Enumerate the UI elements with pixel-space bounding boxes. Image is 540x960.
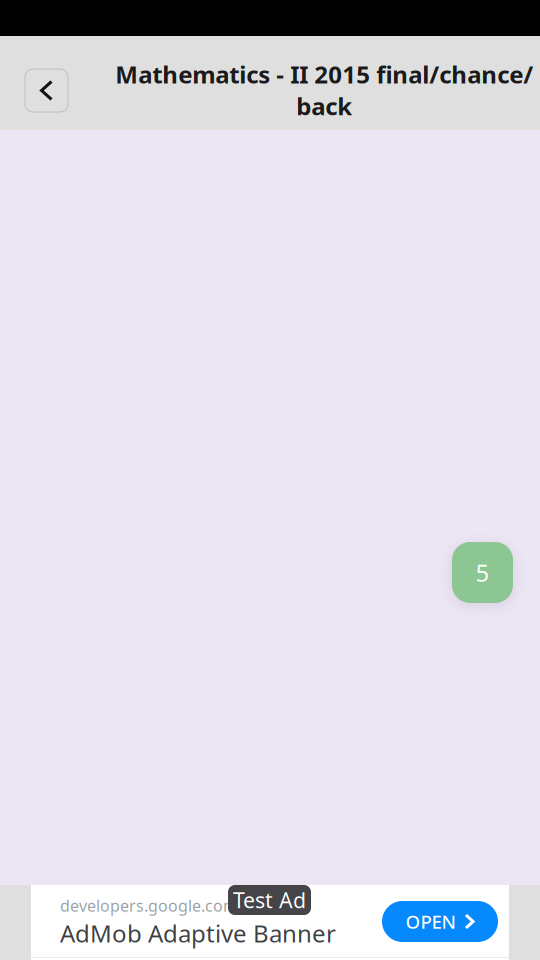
button[interactable]: OPEN xyxy=(382,901,498,942)
button[interactable]: 5 xyxy=(452,542,513,603)
staticText: developers.google.com xyxy=(60,895,238,916)
staticText: Mathematics - II 2015 final/chance/back xyxy=(115,58,533,122)
staticText: OPEN xyxy=(405,909,455,934)
staticText: 5 xyxy=(475,557,489,588)
button[interactable]: Back xyxy=(25,69,68,112)
staticText: Test Ad xyxy=(233,886,306,914)
button[interactable]: AdMob Adaptive Banner — developers.googl… xyxy=(31,885,509,960)
staticText: AdMob Adaptive Banner xyxy=(60,917,336,949)
